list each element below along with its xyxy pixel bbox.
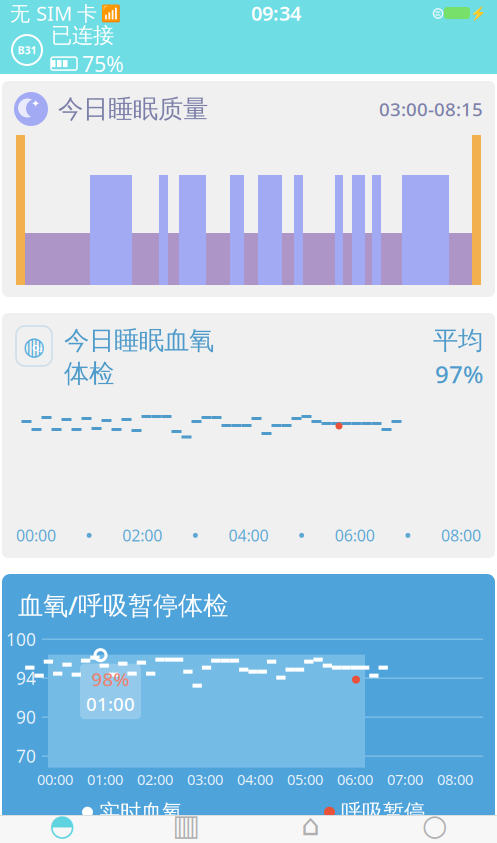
button[interactable]: Home <box>248 815 373 843</box>
staticText: 03:00 <box>187 770 223 789</box>
staticText: 70 <box>16 745 36 768</box>
staticText: 呼吸暂停 <box>335 799 425 825</box>
staticText: 98% <box>91 667 129 691</box>
staticText: 07:00 <box>387 770 423 789</box>
staticText: 无 SIM 卡 <box>10 0 97 26</box>
staticText: ⌂ <box>301 808 320 842</box>
staticText: 📶 <box>97 2 121 24</box>
staticText: ○ <box>422 808 448 842</box>
staticText: 06:00 <box>335 525 375 546</box>
staticText: 08:00 <box>441 525 481 546</box>
staticText: 平均 <box>433 325 483 356</box>
staticText: 90 <box>16 706 36 729</box>
button[interactable]: ◍ <box>2 313 495 558</box>
button[interactable]: 血氧/呼吸暂停体检 <box>2 574 495 839</box>
staticText: 94 <box>16 667 36 690</box>
staticText: ⊜ <box>431 4 444 22</box>
staticText: ✦ <box>31 97 40 109</box>
staticText: B31 <box>17 43 36 57</box>
staticText: 体检 <box>64 358 114 389</box>
staticText: 100 <box>6 628 36 651</box>
staticText: 01:00 <box>86 691 135 716</box>
button[interactable]: Search <box>373 815 497 843</box>
staticText: ◍ <box>23 332 45 360</box>
staticText: 已连接 <box>51 22 114 48</box>
staticText: 今日睡眠血氧 <box>64 325 214 356</box>
button[interactable]: Summary <box>0 815 124 843</box>
staticText: 75% <box>82 49 124 78</box>
staticText: ◓ <box>49 808 75 842</box>
staticText: 97% <box>435 358 483 390</box>
staticText: ▥ <box>172 808 200 842</box>
staticText: 02:00 <box>137 770 173 789</box>
staticText: O₂ <box>32 341 43 354</box>
staticText: 08:00 <box>437 770 473 789</box>
staticText: 04:00 <box>228 525 268 546</box>
staticText: 05:00 <box>287 770 323 789</box>
staticText: 04:00 <box>237 770 273 789</box>
staticText: 今日睡眠质量 <box>58 93 208 124</box>
staticText: 03:00-08:15 <box>379 97 483 121</box>
staticText: 09:34 <box>251 0 301 26</box>
staticText: 00:00 <box>37 770 73 789</box>
staticText: 02:00 <box>122 525 162 546</box>
staticText: 实时血氧 <box>93 799 183 825</box>
staticText: 00:00 <box>16 525 56 546</box>
staticText: 血氧/呼吸暂停体检 <box>18 588 228 622</box>
staticText: 01:00 <box>87 770 123 789</box>
staticText: ⚡ <box>470 5 487 21</box>
staticText: 06:00 <box>337 770 373 789</box>
button[interactable]: ✦ <box>2 81 495 297</box>
button[interactable]: Statistics <box>124 815 248 843</box>
